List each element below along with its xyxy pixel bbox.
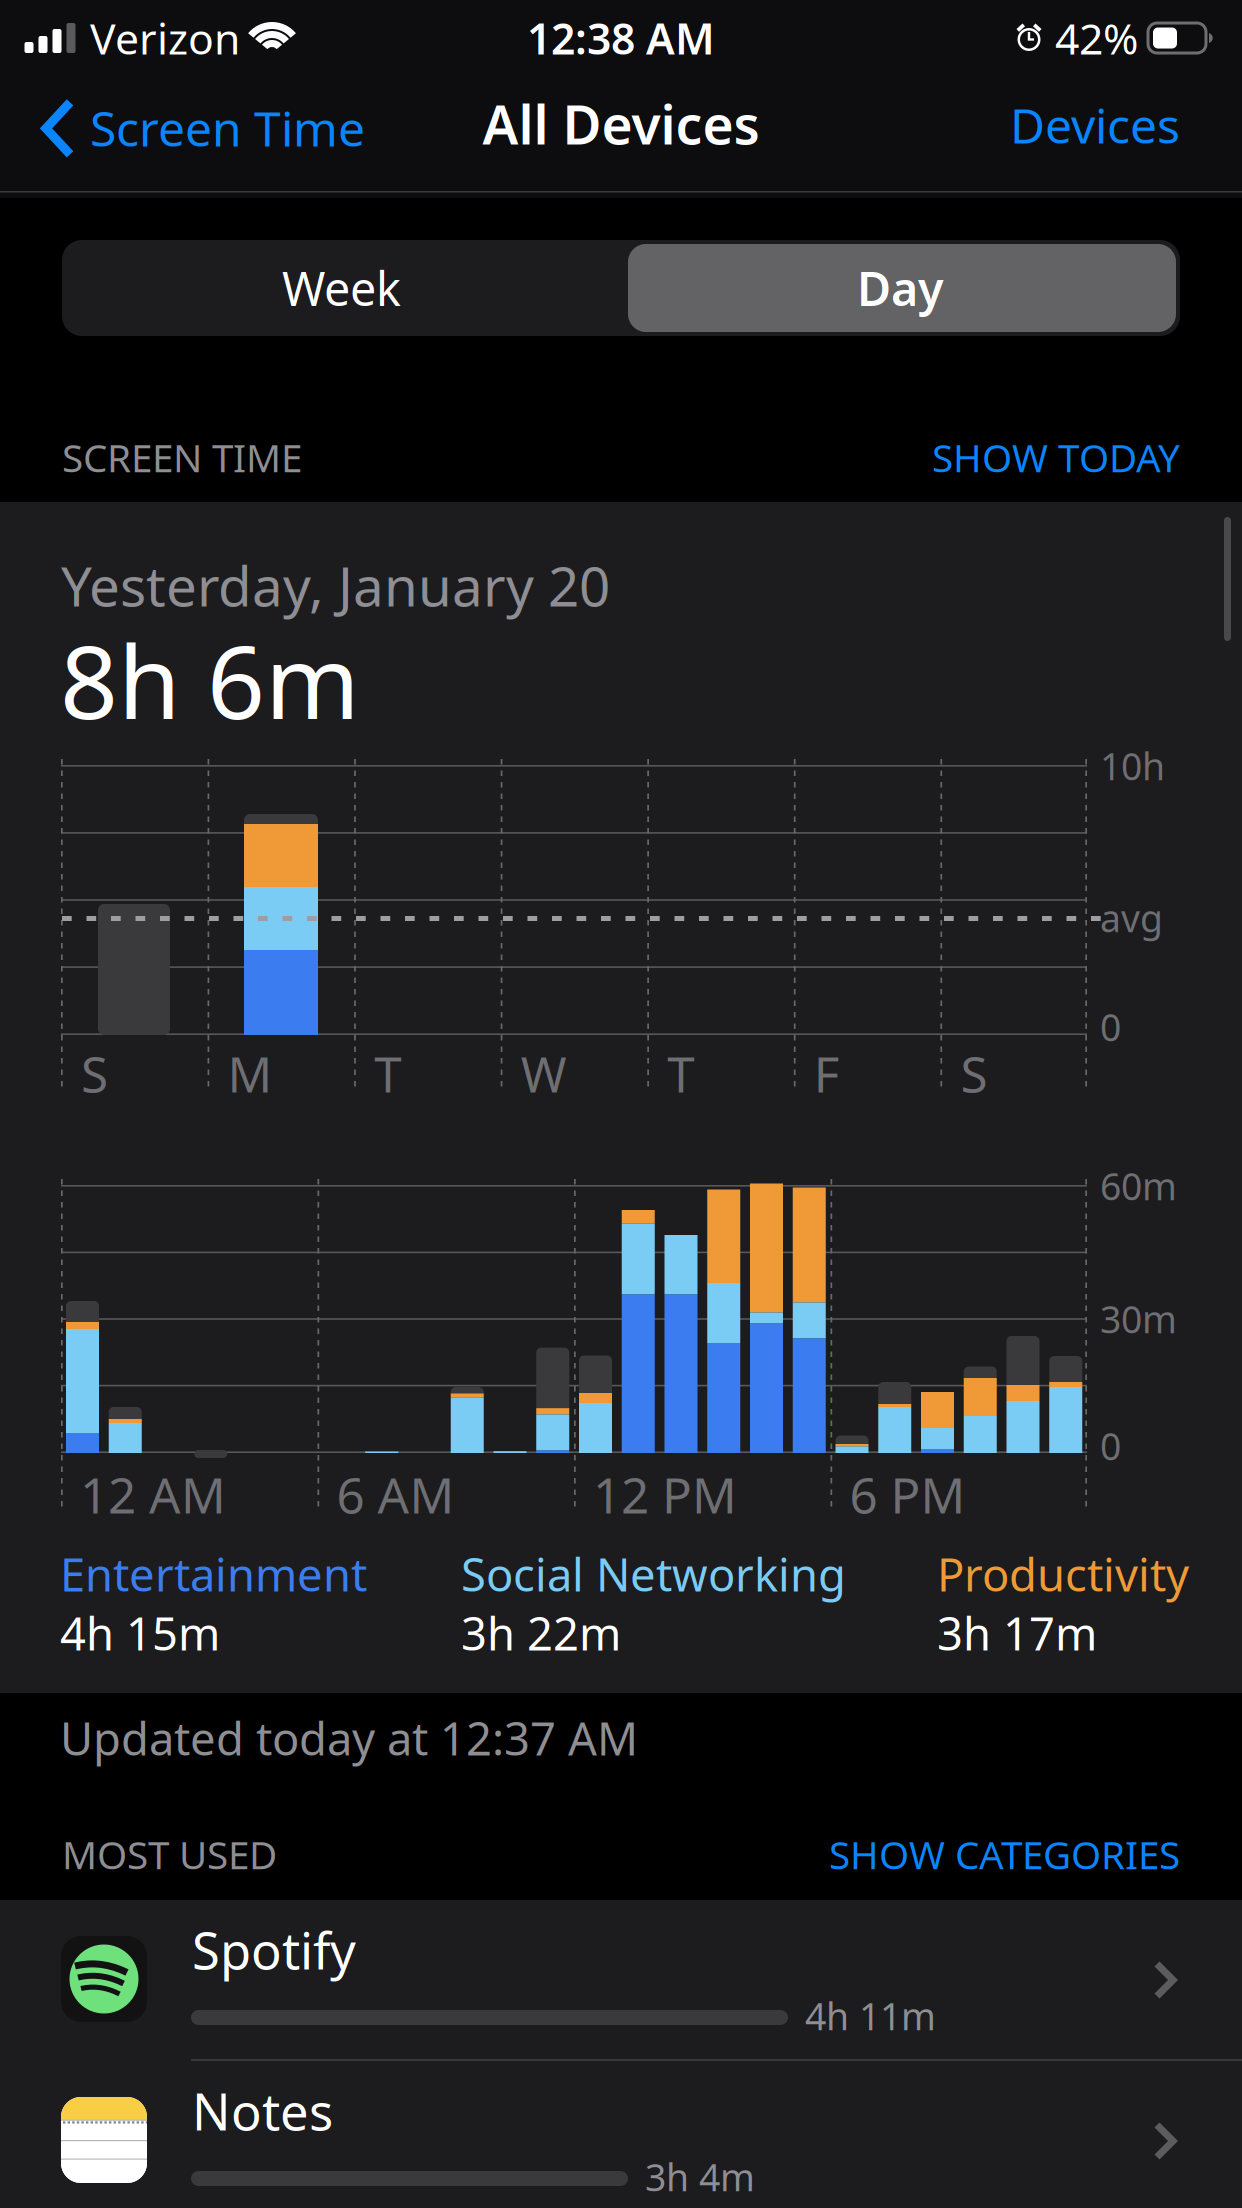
staticText: Screen Time xyxy=(90,96,365,160)
staticText: 4h 11m xyxy=(805,1991,936,2041)
button[interactable]: Screen Time xyxy=(0,87,383,171)
staticText: Social Networking xyxy=(461,1544,846,1604)
staticText: SCREEN TIME xyxy=(62,432,302,483)
staticText: W xyxy=(521,1041,567,1106)
staticText: SHOW TODAY xyxy=(932,432,1180,483)
staticText: S xyxy=(81,1041,108,1106)
staticText: Entertainment xyxy=(60,1544,367,1604)
staticText: SHOW CATEGORIES xyxy=(829,1829,1180,1880)
staticText: Day xyxy=(857,257,944,319)
staticText: 3h 4m xyxy=(645,2152,755,2202)
staticText: Week xyxy=(282,257,401,319)
staticText: T xyxy=(374,1041,401,1106)
staticText: S xyxy=(960,1041,987,1106)
staticText: Updated today at 12:37 AM xyxy=(60,1708,638,1768)
staticText: MOST USED xyxy=(62,1829,277,1880)
staticText: Productivity xyxy=(937,1544,1189,1604)
staticText: F xyxy=(814,1041,840,1106)
staticText: M xyxy=(228,1041,273,1106)
staticText: Yesterday, January 20 xyxy=(61,549,610,622)
staticText: All Devices xyxy=(482,88,759,159)
staticText: 6 PM xyxy=(849,1462,965,1527)
button[interactable]: SHOW TODAY xyxy=(912,418,1242,497)
button[interactable]: SHOW CATEGORIES xyxy=(809,1815,1242,1894)
staticText: Verizon xyxy=(90,10,240,66)
staticText: 12 AM xyxy=(80,1462,226,1527)
staticText: 0 xyxy=(1100,1002,1121,1052)
staticText: 8h 6m xyxy=(60,612,360,747)
button[interactable]: Week xyxy=(62,240,621,336)
staticText: 4h 15m xyxy=(60,1603,220,1663)
staticText: 3h 22m xyxy=(461,1603,621,1663)
staticText: Devices xyxy=(1010,93,1180,157)
staticText: Notes xyxy=(192,2077,333,2144)
staticText: T xyxy=(667,1041,694,1106)
staticText: avg xyxy=(1100,893,1163,943)
button[interactable]: Day xyxy=(621,240,1180,336)
staticText: 3h 17m xyxy=(937,1603,1097,1663)
staticText: 12 PM xyxy=(593,1462,737,1527)
button[interactable]: Spotify xyxy=(0,1900,1242,2059)
staticText: 6 AM xyxy=(336,1462,454,1527)
staticText: 0 xyxy=(1100,1421,1121,1471)
button[interactable]: Devices xyxy=(986,75,1242,175)
staticText: Spotify xyxy=(192,1916,356,1983)
button[interactable]: Notes xyxy=(0,2061,1242,2208)
staticText: 42% xyxy=(1055,10,1138,66)
staticText: 30m xyxy=(1100,1294,1177,1344)
staticText: 60m xyxy=(1100,1161,1177,1211)
staticText: 12:38 AM xyxy=(527,10,715,66)
staticText: 10h xyxy=(1100,741,1165,791)
